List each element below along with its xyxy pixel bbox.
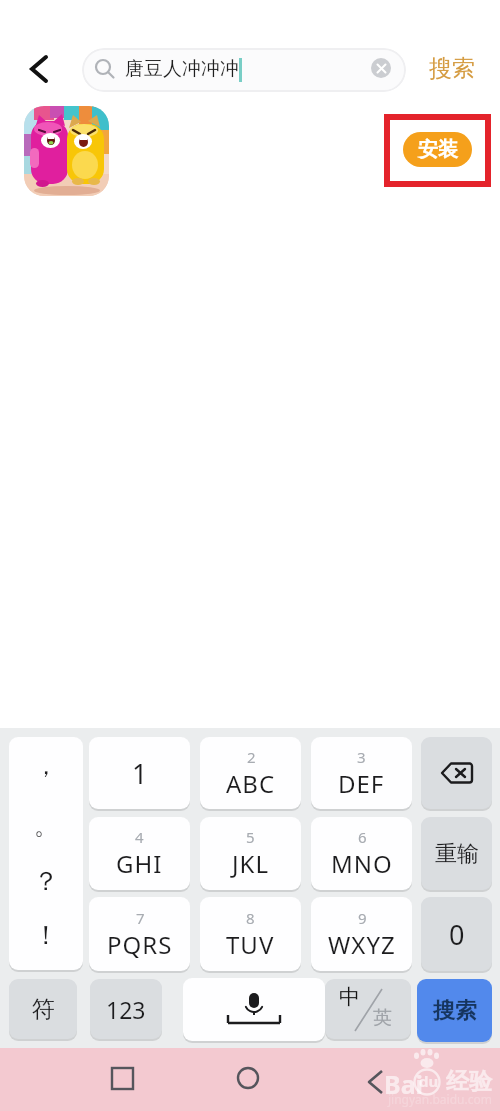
button[interactable] [183,978,325,1041]
button[interactable] [24,106,109,196]
button[interactable] [112,1068,133,1089]
staticText: JKL [232,847,269,880]
staticText: 1 [132,755,148,792]
staticText: 搜索 [433,997,477,1025]
staticText: 5 [246,827,255,847]
button[interactable] [82,48,406,92]
button[interactable]: 4 [89,817,190,890]
button[interactable]: 搜索 [429,54,475,83]
button[interactable]: 8 [200,897,301,971]
staticText: 中 [339,984,360,1010]
button[interactable]: 搜索 [417,979,492,1042]
button[interactable]: 3 [311,737,412,809]
staticText: 唐豆人冲冲冲 [125,57,239,81]
button[interactable]: ， [9,737,83,970]
staticText: 123 [106,994,146,1025]
staticText: ， [34,751,58,781]
staticText: 。 [34,811,58,841]
staticText: 2 [247,747,256,767]
staticText: TUV [226,928,275,961]
button[interactable]: 7 [89,897,190,971]
staticText: ？ [33,865,59,898]
staticText: 英 [373,1006,392,1030]
button[interactable]: 6 [311,817,412,890]
staticText: 安装 [418,137,458,162]
button[interactable]: 1 [89,737,190,809]
button[interactable]: 安装 [403,132,472,167]
staticText: ！ [33,919,59,952]
button[interactable]: 5 [200,817,301,890]
button[interactable]: 0 [421,897,492,971]
button[interactable]: 中 [325,979,411,1039]
staticText: GHI [116,847,163,880]
button[interactable]: 9 [311,897,412,971]
button[interactable]: 重输 [421,817,492,890]
staticText: 7 [136,908,145,928]
staticText: du [419,1071,439,1091]
staticText: 搜索 [429,54,475,83]
staticText: DEF [338,767,385,800]
button[interactable] [421,737,492,809]
staticText: 4 [135,827,144,847]
staticText: jingyan.baidu.com [388,1091,492,1107]
staticText: 符 [32,995,55,1024]
staticText: 9 [358,908,367,928]
staticText: Bai [384,1067,424,1101]
staticText: PQRS [107,928,173,961]
staticText: WXYZ [328,928,396,961]
staticText: 0 [449,916,465,953]
button[interactable] [28,53,50,85]
button[interactable] [366,1069,384,1095]
staticText: 经验 [446,1067,492,1096]
button[interactable] [237,1067,259,1089]
button[interactable]: 2 [200,737,301,809]
staticText: 3 [357,747,366,767]
button[interactable]: 123 [90,979,162,1039]
staticText: ABC [226,767,276,800]
staticText: MNO [331,847,393,880]
button[interactable]: 符 [9,979,77,1039]
button[interactable] [371,58,391,78]
staticText: 6 [358,827,367,847]
staticText: 8 [246,908,255,928]
staticText: 重输 [435,840,479,868]
